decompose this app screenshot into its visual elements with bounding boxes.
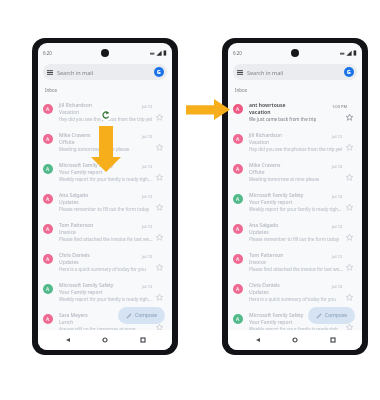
other: Refreshing bbox=[100, 109, 112, 121]
button[interactable]: Star bbox=[156, 264, 163, 271]
staticText: Tom Patterson bbox=[59, 222, 94, 229]
button[interactable]: Star bbox=[346, 174, 353, 181]
button[interactable]: Star bbox=[156, 114, 163, 121]
button[interactable]: Star bbox=[156, 294, 163, 301]
button[interactable]: Recent apps bbox=[325, 332, 341, 348]
staticText: A bbox=[236, 226, 240, 233]
staticText: Please remember to fill out the form tod… bbox=[249, 236, 339, 242]
staticText: A bbox=[236, 316, 240, 323]
button[interactable]: Back bbox=[250, 332, 266, 348]
button[interactable]: A bbox=[228, 306, 362, 336]
button[interactable]: Star bbox=[346, 264, 353, 271]
staticText: Jul 12 bbox=[142, 134, 153, 139]
button[interactable]: Star bbox=[156, 234, 163, 241]
staticText: A bbox=[236, 196, 240, 203]
staticText: Meeting tomorrow at nine please bbox=[59, 146, 130, 152]
staticText: Invoice bbox=[249, 259, 266, 266]
button[interactable]: Account bbox=[154, 67, 164, 77]
staticText: A bbox=[46, 136, 50, 143]
staticText: Search in mail bbox=[57, 69, 94, 76]
button[interactable]: Star bbox=[346, 114, 353, 121]
button[interactable]: Star bbox=[346, 324, 353, 331]
button[interactable]: A bbox=[228, 96, 362, 126]
button[interactable]: Back bbox=[60, 332, 76, 348]
button[interactable]: A bbox=[228, 246, 362, 276]
staticText: Hey did you see the photos from the trip… bbox=[59, 116, 153, 122]
staticText: Weekly report for your family is ready r… bbox=[249, 206, 343, 212]
staticText: Ana Salgado bbox=[249, 222, 279, 229]
button[interactable]: A bbox=[38, 306, 172, 336]
staticText: Microsoft Family Safety bbox=[59, 162, 114, 169]
staticText: Inbox bbox=[235, 87, 248, 93]
staticText: Invoice bbox=[59, 229, 76, 236]
staticText: 6:20 bbox=[43, 50, 52, 56]
staticText: Jul 12 bbox=[332, 134, 343, 139]
staticText: A bbox=[236, 106, 240, 113]
button[interactable]: Star bbox=[156, 204, 163, 211]
staticText: Jul 12 bbox=[142, 164, 153, 169]
staticText: Here is a quick summary of today for you bbox=[59, 266, 146, 272]
staticText: Compose bbox=[325, 312, 348, 319]
staticText: Ana Salgado bbox=[59, 192, 89, 199]
staticText: Jul 12 bbox=[332, 284, 343, 289]
button[interactable]: Star bbox=[156, 174, 163, 181]
button[interactable]: Compose bbox=[308, 307, 355, 324]
button[interactable]: A bbox=[228, 336, 362, 350]
staticText: Offsite bbox=[59, 139, 75, 146]
staticText: Jill Richardson bbox=[249, 132, 282, 139]
staticText: Jul 12 bbox=[142, 224, 153, 229]
staticText: Inbox bbox=[45, 87, 58, 93]
staticText: 6:20 bbox=[233, 50, 242, 56]
button[interactable]: A bbox=[38, 156, 172, 186]
button[interactable]: Recent apps bbox=[135, 332, 151, 348]
button[interactable]: A bbox=[38, 186, 172, 216]
staticText: Vacation bbox=[59, 109, 80, 116]
staticText: A bbox=[236, 166, 240, 173]
button[interactable]: A bbox=[228, 126, 362, 156]
button[interactable]: A bbox=[228, 156, 362, 186]
button[interactable]: Search in mail bbox=[43, 64, 167, 80]
button[interactable]: Home bbox=[97, 332, 113, 348]
button[interactable]: Star bbox=[346, 294, 353, 301]
staticText: Jul 12 bbox=[332, 314, 343, 319]
button[interactable]: Account bbox=[344, 67, 354, 77]
button[interactable]: A bbox=[228, 186, 362, 216]
button[interactable]: Star bbox=[156, 144, 163, 151]
button[interactable]: Compose bbox=[118, 307, 165, 324]
staticText: Jul 12 bbox=[332, 194, 343, 199]
button[interactable]: A bbox=[38, 96, 172, 126]
staticText: A bbox=[46, 316, 50, 323]
button[interactable]: Home bbox=[287, 332, 303, 348]
staticText: Microsoft Family Safety bbox=[59, 282, 114, 289]
staticText: Your Family report bbox=[59, 169, 103, 176]
staticText: Hey did you see the photos from the trip… bbox=[249, 146, 343, 152]
button[interactable]: A bbox=[38, 336, 172, 350]
staticText: A bbox=[236, 256, 240, 263]
staticText: Lunch bbox=[59, 319, 74, 326]
button[interactable]: Search in mail bbox=[233, 64, 357, 80]
staticText: vacation bbox=[249, 109, 271, 116]
staticText: We just came back from the trip bbox=[249, 116, 317, 122]
button[interactable]: Star bbox=[346, 204, 353, 211]
staticText: ant howrtouse bbox=[249, 102, 286, 109]
staticText: Weekly report for your family is ready r… bbox=[249, 326, 343, 332]
button[interactable]: A bbox=[38, 126, 172, 156]
button[interactable]: A bbox=[38, 276, 172, 306]
staticText: A bbox=[236, 136, 240, 143]
button[interactable]: A bbox=[38, 216, 172, 246]
staticText: Offsite bbox=[249, 169, 265, 176]
staticText: Chris Daniels bbox=[59, 252, 90, 259]
staticText: Compose bbox=[135, 312, 158, 319]
button[interactable]: Star bbox=[346, 234, 353, 241]
staticText: 1:00 PM bbox=[332, 104, 348, 109]
button[interactable]: Star bbox=[346, 144, 353, 151]
button[interactable]: A bbox=[38, 246, 172, 276]
staticText: Your Family report bbox=[249, 199, 293, 206]
button[interactable]: A bbox=[228, 216, 362, 246]
button[interactable]: Star bbox=[156, 324, 163, 331]
button[interactable]: A bbox=[228, 276, 362, 306]
